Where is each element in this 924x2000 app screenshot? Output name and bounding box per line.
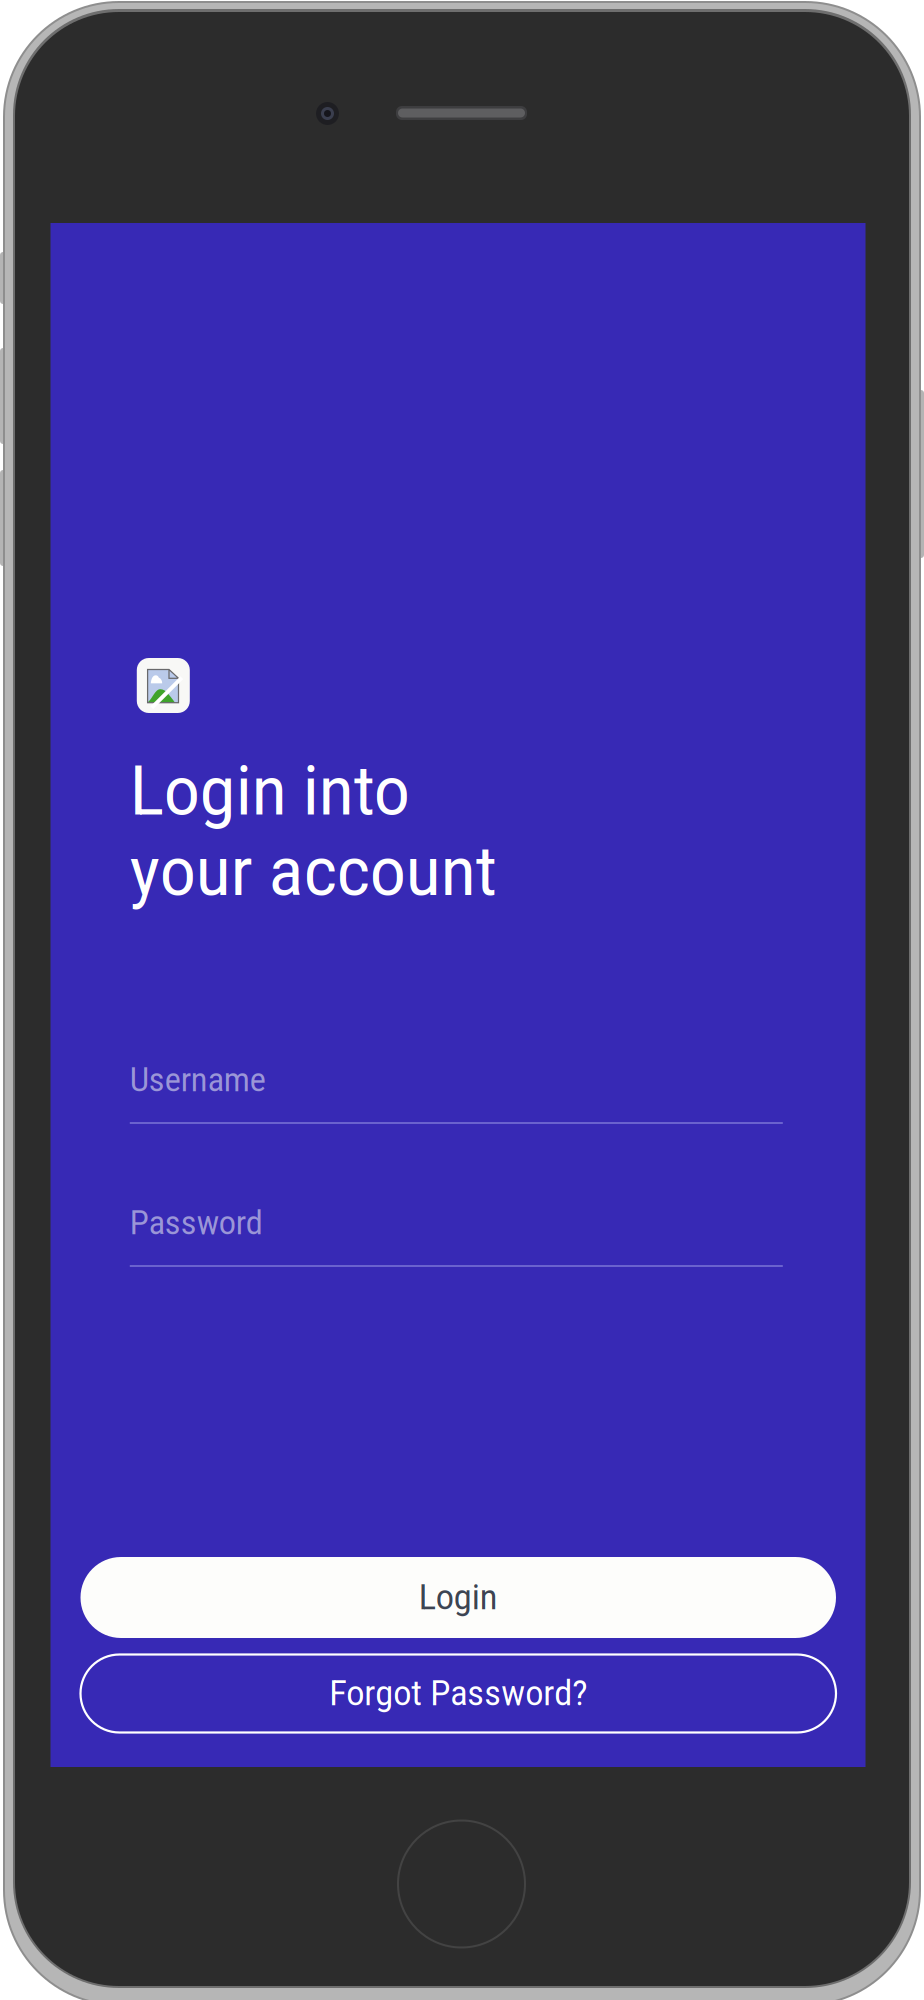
staticText: Username xyxy=(130,1061,266,1099)
staticText: Login into your account xyxy=(130,751,497,912)
button[interactable]: Forgot Password? xyxy=(80,1654,836,1732)
staticText: Login xyxy=(419,1577,498,1618)
button[interactable]: Login xyxy=(80,1557,836,1638)
staticText: Password xyxy=(130,1204,263,1242)
staticText: Forgot Password? xyxy=(329,1673,587,1714)
